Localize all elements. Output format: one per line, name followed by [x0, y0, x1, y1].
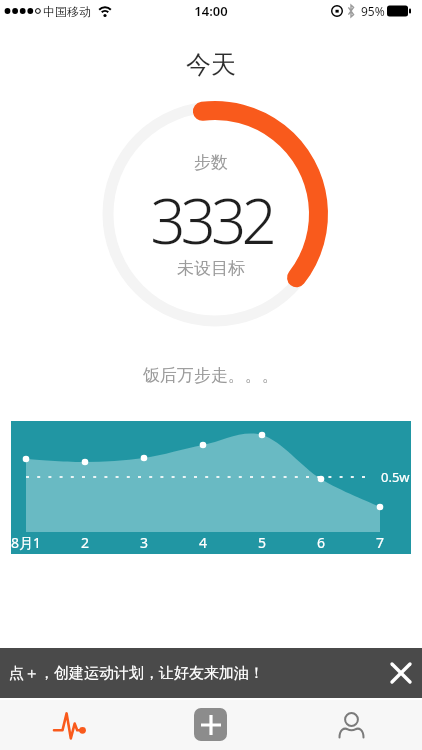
button[interactable]	[48, 704, 92, 748]
staticText: 3332	[0, 178, 422, 262]
staticText: 8月1	[0, 533, 56, 552]
staticText: 2	[55, 533, 115, 552]
staticText: 点＋，创建运动计划，让好友来加油！	[9, 664, 264, 683]
staticText: 14:00	[0, 2, 422, 20]
staticText: 7	[350, 533, 410, 552]
button[interactable]	[386, 658, 416, 688]
staticText: 0.5w	[381, 468, 410, 486]
staticText: 5	[232, 533, 292, 552]
staticText: 步数	[0, 152, 422, 173]
staticText: 饭后万步走。。。	[0, 365, 422, 386]
staticText: 6	[291, 533, 351, 552]
staticText: 未设目标	[0, 258, 422, 279]
staticText: 3	[114, 533, 174, 552]
button[interactable]: 点＋，创建运动计划，让好友来加油！	[0, 648, 422, 698]
staticText: 4	[173, 533, 233, 552]
staticText: 95%	[361, 3, 385, 19]
staticText: 今天	[0, 49, 422, 80]
button[interactable]	[194, 708, 227, 741]
button[interactable]	[330, 706, 374, 746]
staticText: 中国移动	[43, 4, 91, 19]
